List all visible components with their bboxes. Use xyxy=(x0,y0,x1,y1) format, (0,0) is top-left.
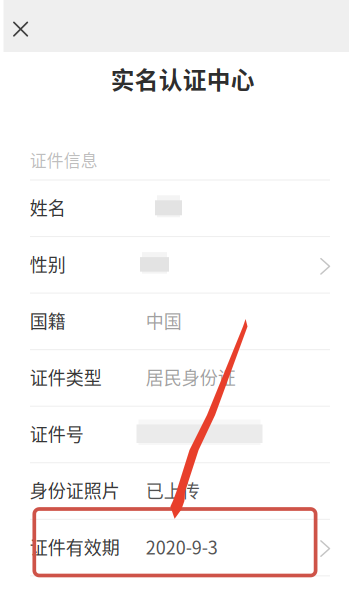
staticText: 2020-9-3 xyxy=(146,533,218,560)
staticText: 证件有效期 xyxy=(30,533,120,560)
staticText: 居民身份证 xyxy=(146,364,236,390)
staticText: 性别 xyxy=(30,251,66,277)
staticText: 身份证照片 xyxy=(30,477,120,503)
staticText: 中国 xyxy=(146,307,182,333)
staticText: 姓名 xyxy=(30,194,66,220)
button[interactable]: Close xyxy=(4,9,38,49)
button[interactable]: 性别 xyxy=(0,236,349,293)
staticText: 证件号 xyxy=(30,420,84,446)
staticText: 国籍 xyxy=(30,307,66,333)
staticText: 证件信息 xyxy=(30,147,98,172)
staticText: 证件类型 xyxy=(30,364,102,390)
button[interactable]: 证件有效期 xyxy=(0,519,349,575)
staticText: 实名认证中心 xyxy=(111,61,255,96)
staticText: 已上传 xyxy=(146,477,200,503)
